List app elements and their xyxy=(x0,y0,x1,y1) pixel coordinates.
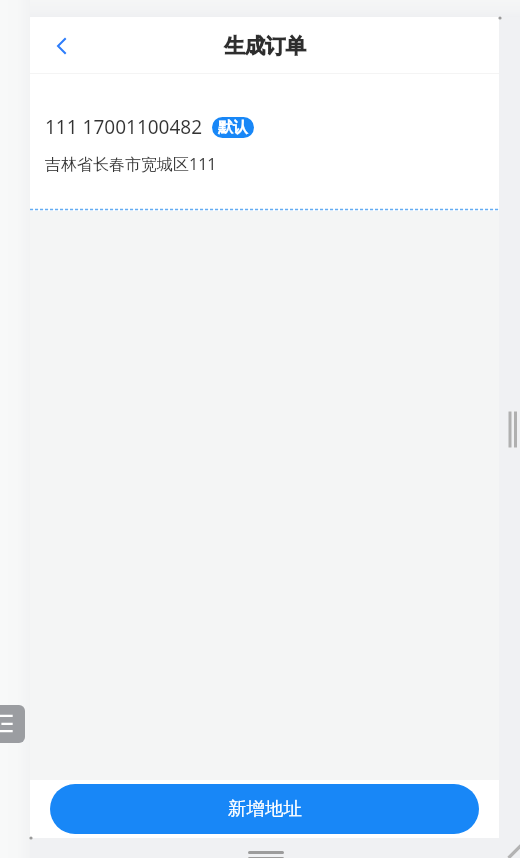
other: Resize width xyxy=(508,411,518,448)
staticText: 吉林省长春市宽城区111 xyxy=(45,153,217,175)
staticText: 新增地址 xyxy=(228,797,302,820)
button[interactable]: 新增地址 xyxy=(50,784,479,834)
button[interactable]: Back xyxy=(39,24,83,68)
button[interactable]: Menu xyxy=(0,705,25,743)
staticText: 生成订单 xyxy=(224,33,306,59)
staticText: 默认 xyxy=(218,118,248,137)
staticText: 111 17001100482 xyxy=(45,114,203,140)
other: Resize xyxy=(506,843,520,858)
